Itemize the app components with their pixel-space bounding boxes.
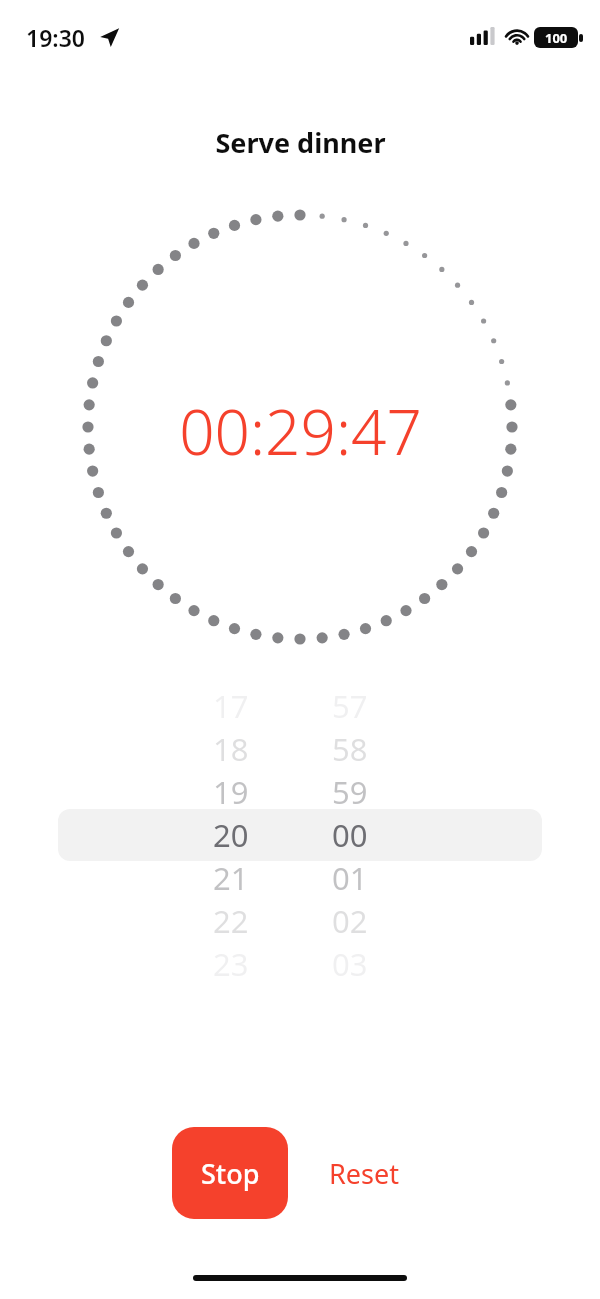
staticText: 20 bbox=[213, 814, 249, 856]
staticText: 03 bbox=[332, 943, 368, 985]
button[interactable]: 21 bbox=[181, 857, 281, 899]
button[interactable]: Reset bbox=[308, 1127, 420, 1219]
button[interactable]: 00 bbox=[300, 814, 400, 856]
staticText: 22 bbox=[213, 900, 249, 942]
button[interactable]: 03 bbox=[300, 943, 400, 985]
button[interactable]: 20 bbox=[181, 814, 281, 856]
staticText: 01 bbox=[332, 857, 368, 899]
staticText: 19:30 bbox=[26, 22, 85, 53]
staticText: 02 bbox=[332, 900, 368, 942]
staticText: Stop bbox=[201, 1155, 260, 1192]
staticText: 21 bbox=[213, 857, 249, 899]
staticText: 58 bbox=[332, 728, 368, 770]
button[interactable]: 18 bbox=[181, 728, 281, 770]
staticText: Serve dinner bbox=[215, 124, 386, 161]
staticText: 100 bbox=[545, 29, 568, 47]
button[interactable]: 59 bbox=[300, 771, 400, 813]
button[interactable]: 23 bbox=[181, 943, 281, 985]
staticText: 00:29:47 bbox=[179, 389, 422, 473]
staticText: 17 bbox=[213, 685, 249, 727]
staticText: Reset bbox=[329, 1155, 399, 1192]
button[interactable]: 22 bbox=[181, 900, 281, 942]
staticText: 18 bbox=[213, 728, 249, 770]
button[interactable]: 58 bbox=[300, 728, 400, 770]
staticText: 00 bbox=[332, 814, 368, 856]
staticText: 57 bbox=[332, 685, 368, 727]
staticText: 23 bbox=[213, 943, 249, 985]
button[interactable]: Stop bbox=[172, 1127, 288, 1219]
button[interactable]: 01 bbox=[300, 857, 400, 899]
button[interactable]: 19 bbox=[181, 771, 281, 813]
staticText: 19 bbox=[213, 771, 249, 813]
staticText: 59 bbox=[332, 771, 368, 813]
button[interactable] bbox=[58, 809, 542, 861]
button[interactable]: 57 bbox=[300, 685, 400, 727]
button[interactable]: 02 bbox=[300, 900, 400, 942]
